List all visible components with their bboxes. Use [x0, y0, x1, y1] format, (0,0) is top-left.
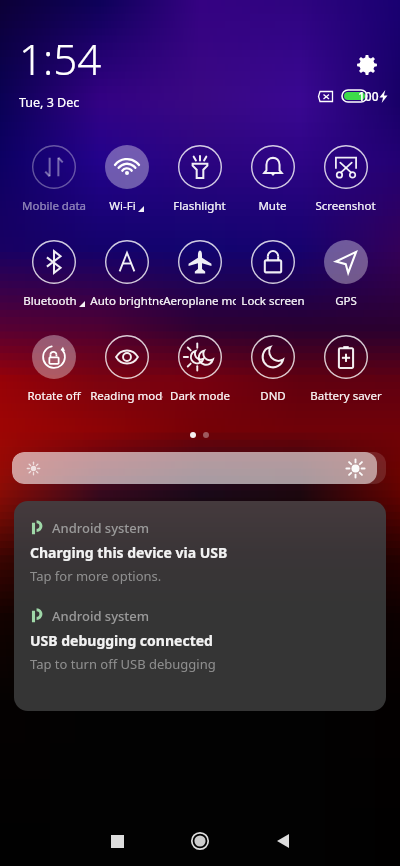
staticText: DND — [260, 388, 286, 404]
button[interactable]: Brightness — [12, 452, 386, 484]
staticText: Reading mode — [90, 388, 163, 404]
staticText: Android system — [52, 519, 150, 537]
staticText: Bluetooth — [23, 293, 77, 309]
staticText: 100 — [358, 88, 379, 104]
button[interactable]: Aeroplane mode — [163, 240, 236, 309]
button[interactable]: Mobile data — [17, 145, 90, 214]
button[interactable]: Recents — [84, 816, 150, 866]
staticText: Tap for more options. — [30, 567, 162, 585]
button[interactable]: Back — [250, 816, 316, 866]
staticText: Android system — [52, 607, 150, 625]
staticText: GPS — [335, 293, 357, 309]
button[interactable]: Android system — [14, 501, 386, 585]
staticText: Mute — [258, 198, 287, 214]
staticText: Flashlight — [173, 198, 226, 214]
staticText: 1:54 — [19, 30, 102, 87]
staticText: Aeroplane mode — [163, 293, 236, 309]
staticText: Lock screen — [241, 293, 305, 309]
button[interactable]: DND — [236, 335, 309, 404]
staticText: Tue, 3 Dec — [19, 94, 80, 111]
staticText: Screenshot — [315, 198, 376, 214]
staticText: Rotate off — [27, 388, 81, 404]
button[interactable]: Home — [167, 816, 233, 866]
staticText: Auto brightness — [90, 293, 163, 309]
button[interactable]: Bluetooth — [17, 240, 90, 309]
staticText: Mobile data — [22, 198, 86, 214]
staticText: Battery saver — [310, 388, 382, 404]
staticText: Tap to turn off USB debugging — [30, 655, 216, 673]
staticText: Wi-Fi — [109, 198, 136, 214]
button[interactable]: Mute — [236, 145, 309, 214]
staticText: USB debugging connected — [30, 631, 213, 650]
button[interactable]: Reading mode — [90, 335, 163, 404]
button[interactable]: Wi-Fi — [90, 145, 163, 214]
button[interactable]: Flashlight — [163, 145, 236, 214]
button[interactable]: GPS — [309, 240, 382, 309]
button[interactable]: Android system — [14, 585, 386, 673]
staticText: Charging this device via USB — [30, 543, 228, 562]
button[interactable]: Lock screen — [236, 240, 309, 309]
button[interactable]: Auto brightness — [90, 240, 163, 309]
button[interactable]: Battery saver — [309, 335, 382, 404]
button[interactable]: Settings — [352, 50, 382, 80]
button[interactable]: Rotate off — [17, 335, 90, 404]
staticText: Dark mode — [170, 388, 230, 404]
button[interactable]: Screenshot — [309, 145, 382, 214]
button[interactable]: Dark mode — [163, 335, 236, 404]
